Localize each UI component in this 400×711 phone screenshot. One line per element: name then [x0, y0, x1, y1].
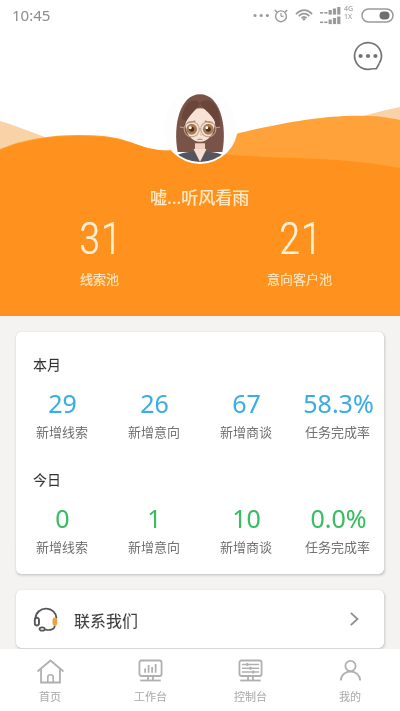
button[interactable]: Profile photo — [162, 88, 238, 164]
staticText: 本月 — [33, 354, 61, 374]
staticText: 1 — [147, 501, 162, 535]
button[interactable]: 1 — [108, 501, 200, 556]
staticText: 10 — [232, 501, 261, 535]
staticText: 21 — [279, 213, 322, 265]
button[interactable]: 67 — [200, 386, 292, 441]
staticText: 嘘...听风看雨 — [150, 184, 250, 209]
button[interactable]: 首页 — [0, 649, 100, 711]
button[interactable]: 0.0% — [292, 501, 384, 556]
button[interactable]: 联系我们 — [16, 590, 384, 648]
staticText: 首页 — [39, 688, 61, 704]
button[interactable]: 29 — [16, 386, 108, 441]
staticText: 26 — [140, 386, 169, 420]
button[interactable]: 控制台 — [200, 649, 300, 711]
staticText: 新增意向 — [128, 537, 181, 556]
button[interactable]: 0 — [16, 501, 108, 556]
button[interactable]: 31 — [0, 213, 200, 288]
staticText: 新增商谈 — [220, 537, 273, 556]
staticText: 意向客户池 — [267, 269, 333, 288]
staticText: 任务完成率 — [305, 422, 371, 441]
staticText: 29 — [48, 386, 77, 420]
staticText: 31 — [79, 213, 122, 265]
staticText: 10:45 — [12, 5, 51, 25]
staticText: 控制台 — [234, 688, 267, 704]
button[interactable]: 工作台 — [100, 649, 200, 711]
button[interactable]: 26 — [108, 386, 200, 441]
button[interactable]: 10 — [200, 501, 292, 556]
staticText: 线索池 — [80, 269, 120, 288]
staticText: 1X — [344, 12, 353, 22]
staticText: 工作台 — [134, 688, 167, 704]
staticText: 联系我们 — [74, 608, 139, 631]
staticText: 新增线索 — [36, 422, 89, 441]
staticText: 新增商谈 — [220, 422, 273, 441]
staticText: 0.0% — [310, 501, 367, 535]
staticText: 新增意向 — [128, 422, 181, 441]
staticText: 我的 — [339, 688, 361, 704]
button[interactable]: 58.3% — [292, 386, 384, 441]
button[interactable]: 我的 — [300, 649, 400, 711]
staticText: 今日 — [33, 469, 61, 489]
staticText: 新增线索 — [36, 537, 89, 556]
button[interactable]: 21 — [200, 213, 400, 288]
staticText: 67 — [232, 386, 261, 420]
staticText: 任务完成率 — [305, 537, 371, 556]
staticText: 4G — [344, 4, 354, 14]
staticText: 0 — [55, 501, 70, 535]
button[interactable]: Messages — [351, 39, 385, 73]
staticText: 58.3% — [303, 386, 374, 420]
